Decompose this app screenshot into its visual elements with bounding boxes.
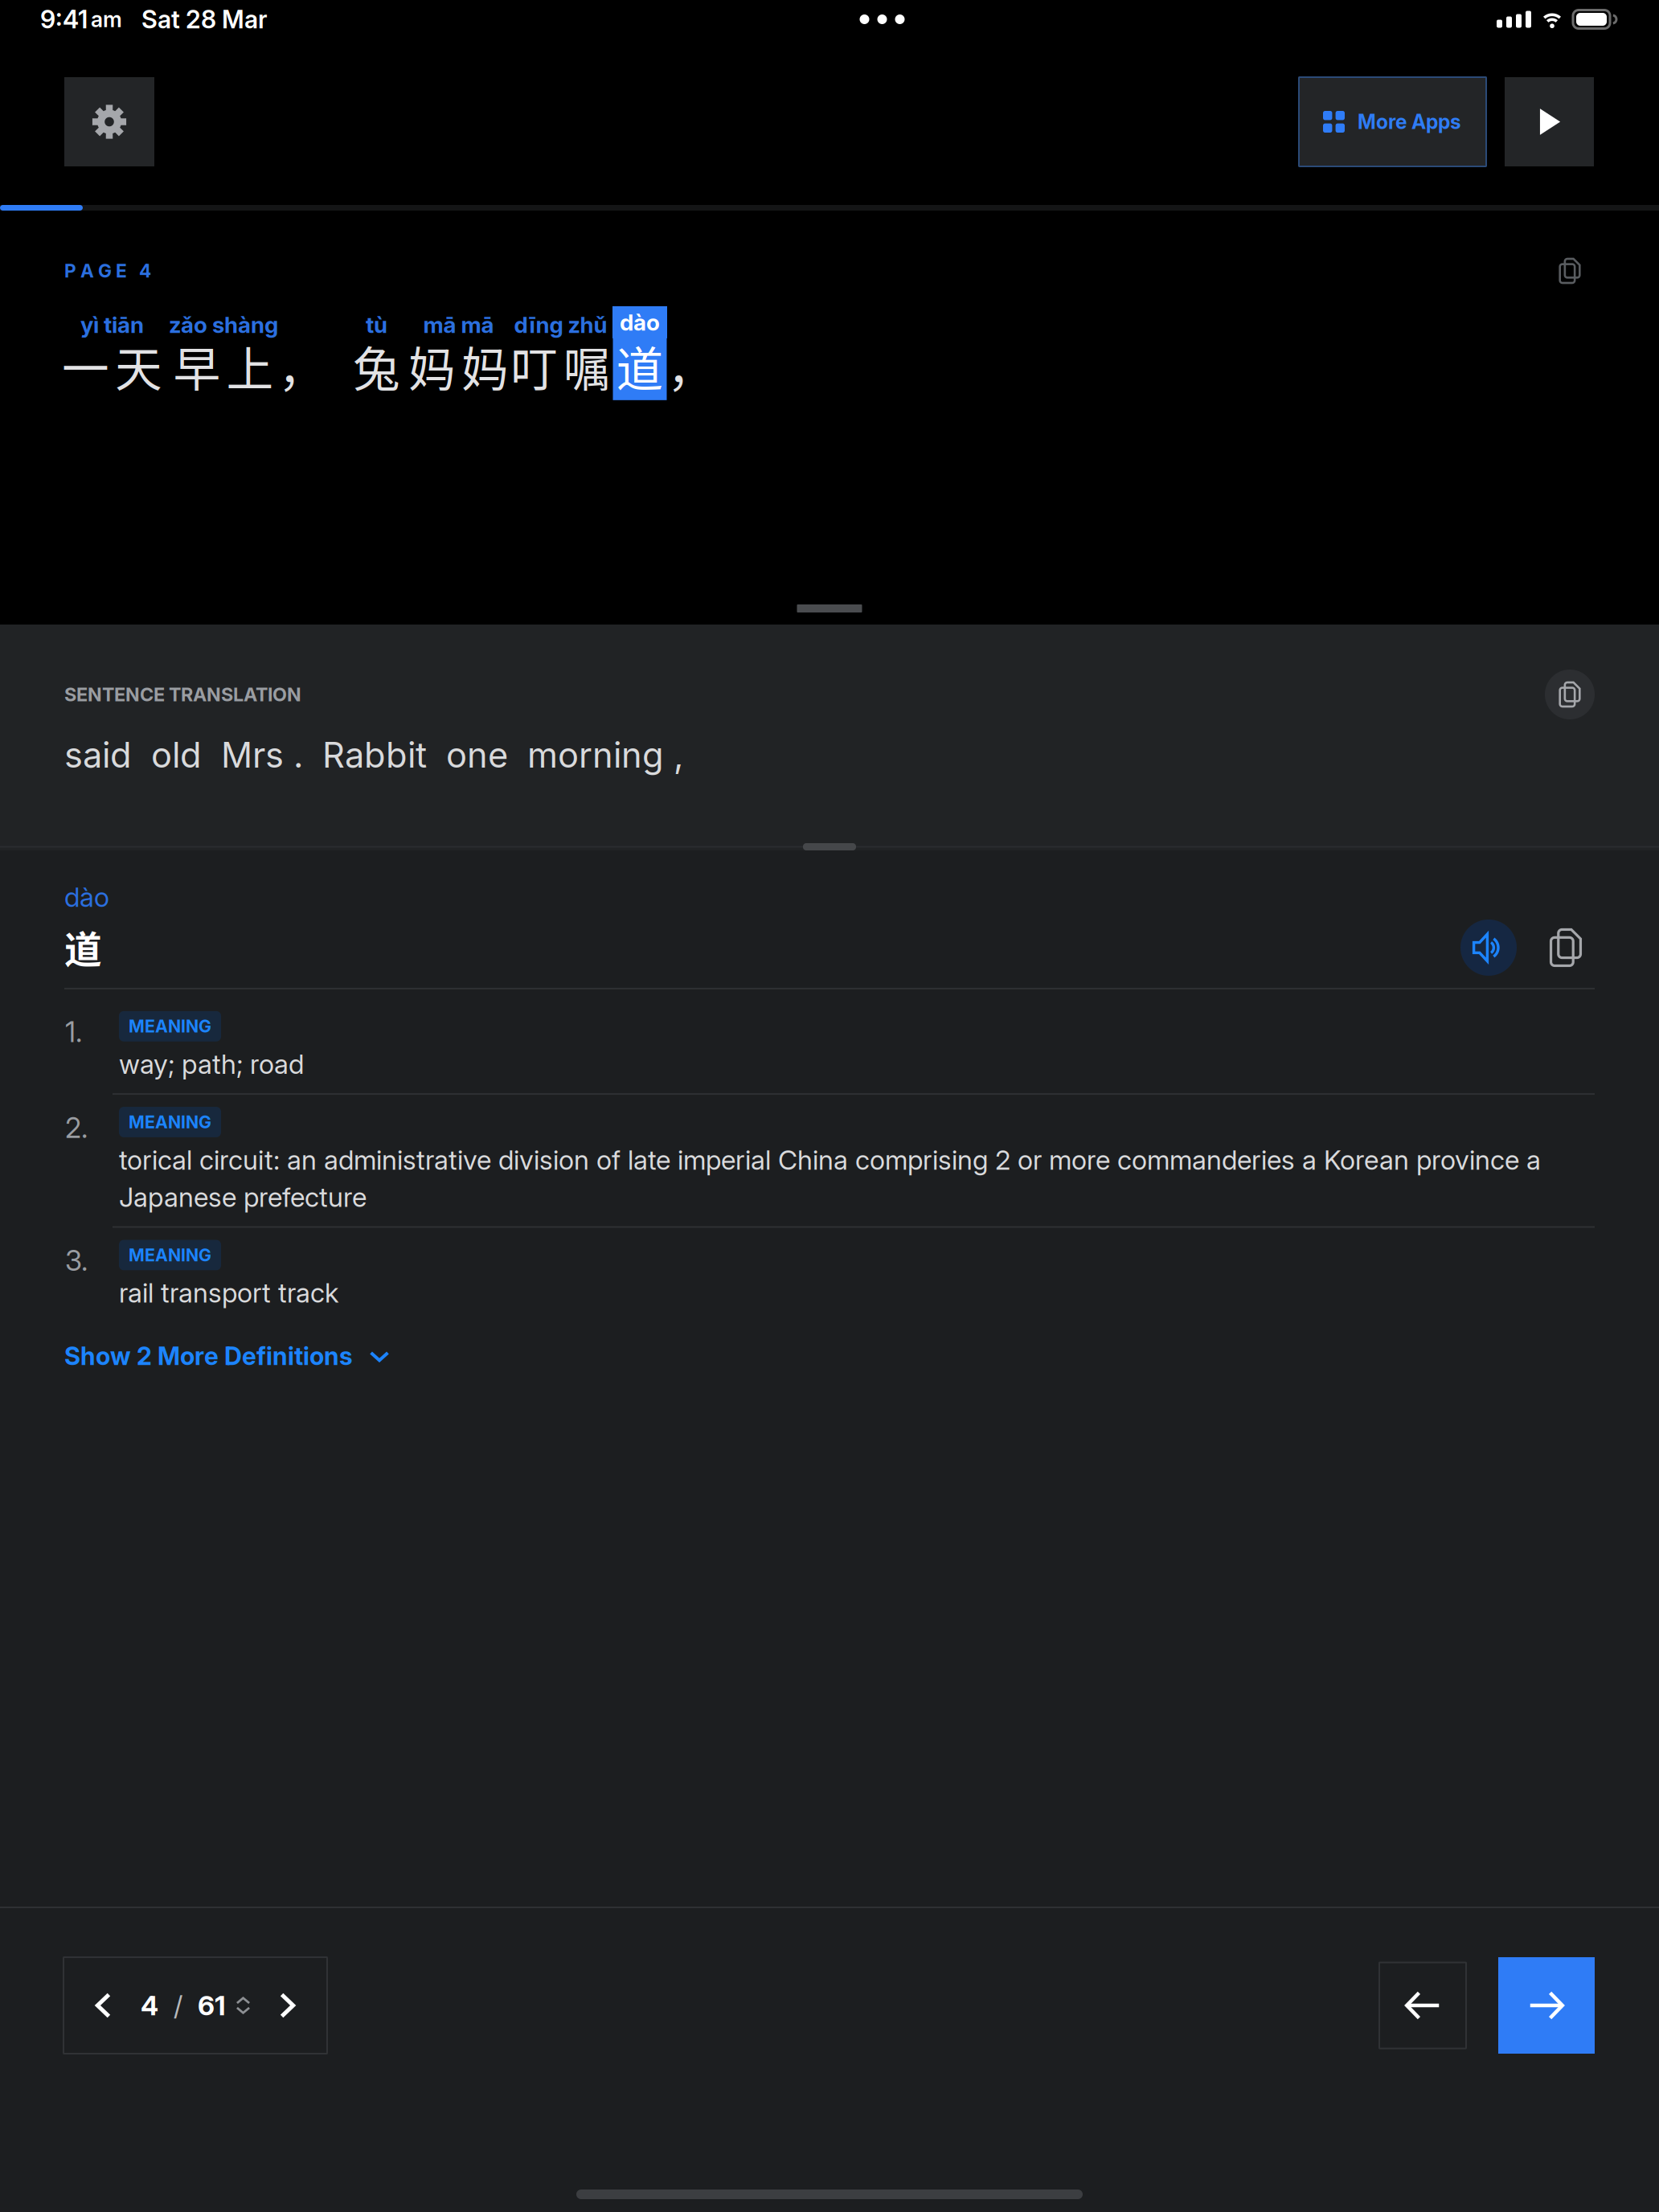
staticText: Show 2 More Definitions	[64, 1341, 353, 1371]
button[interactable]: Copy sentence	[1545, 246, 1595, 296]
staticText: 一	[62, 332, 109, 400]
button[interactable]: Next sentence	[1498, 1957, 1595, 2054]
staticText: tù	[366, 311, 387, 338]
staticText: 1.	[65, 1015, 82, 1049]
staticText: 叮	[510, 332, 558, 400]
staticText: /	[174, 1989, 182, 2022]
staticText: P A G E 4	[64, 260, 151, 282]
staticText: 4	[141, 1989, 158, 2022]
staticText: MEANING	[129, 1016, 211, 1037]
button[interactable]: More Apps	[1299, 77, 1486, 166]
button[interactable]: Play pronunciation	[1460, 920, 1517, 976]
staticText: 道	[64, 920, 102, 974]
staticText: MEANING	[129, 1112, 211, 1132]
staticText: 2.	[65, 1111, 88, 1145]
staticText: am	[91, 6, 122, 32]
staticText: 61	[198, 1989, 226, 2022]
button[interactable]: Play audio	[1505, 77, 1594, 166]
button[interactable]: 4	[63, 1957, 327, 2054]
staticText: torical circuit: an administrative divis…	[119, 1144, 1541, 1213]
staticText: dīng zhǔ	[514, 311, 607, 338]
staticText: 妈	[408, 332, 456, 400]
staticText: 3.	[65, 1244, 88, 1278]
staticText: 早	[173, 332, 221, 400]
staticText: dào	[64, 881, 109, 913]
staticText: 上	[226, 332, 274, 400]
staticText: MEANING	[129, 1245, 211, 1265]
staticText: said old Mrs . Rabbit one morning ,	[64, 734, 683, 776]
staticText: 嘱	[563, 332, 611, 400]
staticText: 9:41	[40, 4, 88, 34]
staticText: yì tiān	[80, 311, 144, 338]
staticText: dào	[620, 309, 660, 336]
staticText: ，	[278, 332, 326, 400]
button[interactable]: Settings	[64, 77, 154, 166]
staticText: ，	[667, 332, 715, 400]
button[interactable]: Show 2 More Definitions	[0, 1324, 1659, 1389]
staticText: More Apps	[1358, 110, 1461, 134]
staticText: mā mā	[423, 311, 494, 338]
button[interactable]: Copy translation	[1545, 670, 1595, 719]
staticText: rail transport track	[119, 1277, 338, 1309]
staticText: 天	[115, 332, 162, 400]
staticText: SENTENCE TRANSLATION	[64, 683, 301, 706]
staticText: 妈	[461, 332, 509, 400]
staticText: Sat 28 Mar	[141, 4, 268, 34]
staticText: zǎo shàng	[169, 311, 278, 338]
staticText: 道	[616, 332, 664, 400]
staticText: way; path; road	[119, 1048, 304, 1080]
button[interactable]: Previous sentence	[1379, 1962, 1466, 2048]
staticText: 兔	[353, 332, 400, 400]
button[interactable]: Copy word	[1541, 920, 1591, 976]
